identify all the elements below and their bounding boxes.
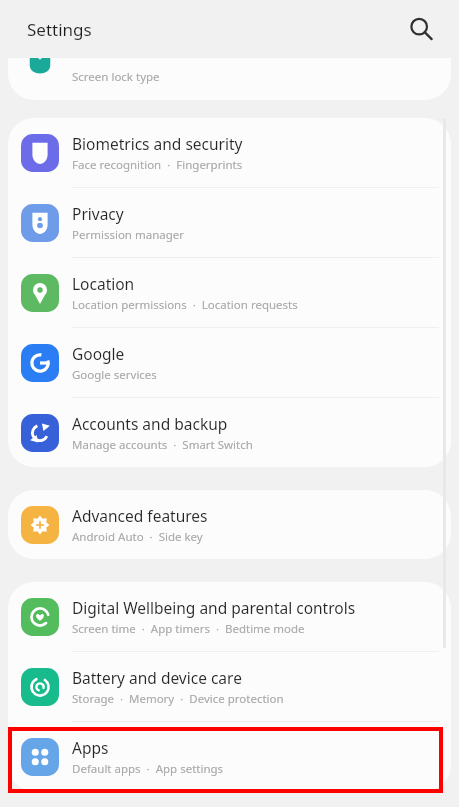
staticText: Android Auto · Side key xyxy=(72,529,203,545)
staticText: Location xyxy=(72,273,135,294)
staticText: Face recognition · Fingerprints xyxy=(72,157,243,173)
staticText: Privacy xyxy=(72,203,124,224)
button[interactable]: Advanced features xyxy=(8,490,451,559)
button[interactable]: Apps xyxy=(8,722,451,791)
staticText: Digital Wellbeing and parental controls xyxy=(72,597,356,618)
button[interactable]: Biometrics and security xyxy=(8,118,451,188)
staticText: Accounts and backup xyxy=(72,413,228,434)
staticText: Google services xyxy=(72,367,157,383)
staticText: Biometrics and security xyxy=(72,133,243,154)
button[interactable]: Search xyxy=(403,11,439,47)
staticText: Location permissions · Location requests xyxy=(72,297,298,313)
button[interactable]: Screen lock type xyxy=(8,58,451,100)
button[interactable]: Battery and device care xyxy=(8,652,451,722)
staticText: Advanced features xyxy=(72,505,208,526)
staticText: Google xyxy=(72,343,125,364)
staticText: Storage · Memory · Device protection xyxy=(72,691,284,707)
button[interactable]: Digital Wellbeing and parental controls xyxy=(8,582,451,652)
staticText: Manage accounts · Smart Switch xyxy=(72,437,253,453)
staticText: Permission manager xyxy=(72,227,185,243)
button[interactable]: Location xyxy=(8,258,451,328)
staticText: Screen lock type xyxy=(72,69,160,85)
staticText: Settings xyxy=(27,18,92,41)
staticText: Apps xyxy=(72,737,109,758)
button[interactable]: Privacy xyxy=(8,188,451,258)
button[interactable]: Google xyxy=(8,328,451,398)
button[interactable]: Accounts and backup xyxy=(8,398,451,467)
staticText: Screen time · App timers · Bedtime mode xyxy=(72,621,305,637)
staticText: Default apps · App settings xyxy=(72,761,224,777)
staticText: Battery and device care xyxy=(72,667,242,688)
